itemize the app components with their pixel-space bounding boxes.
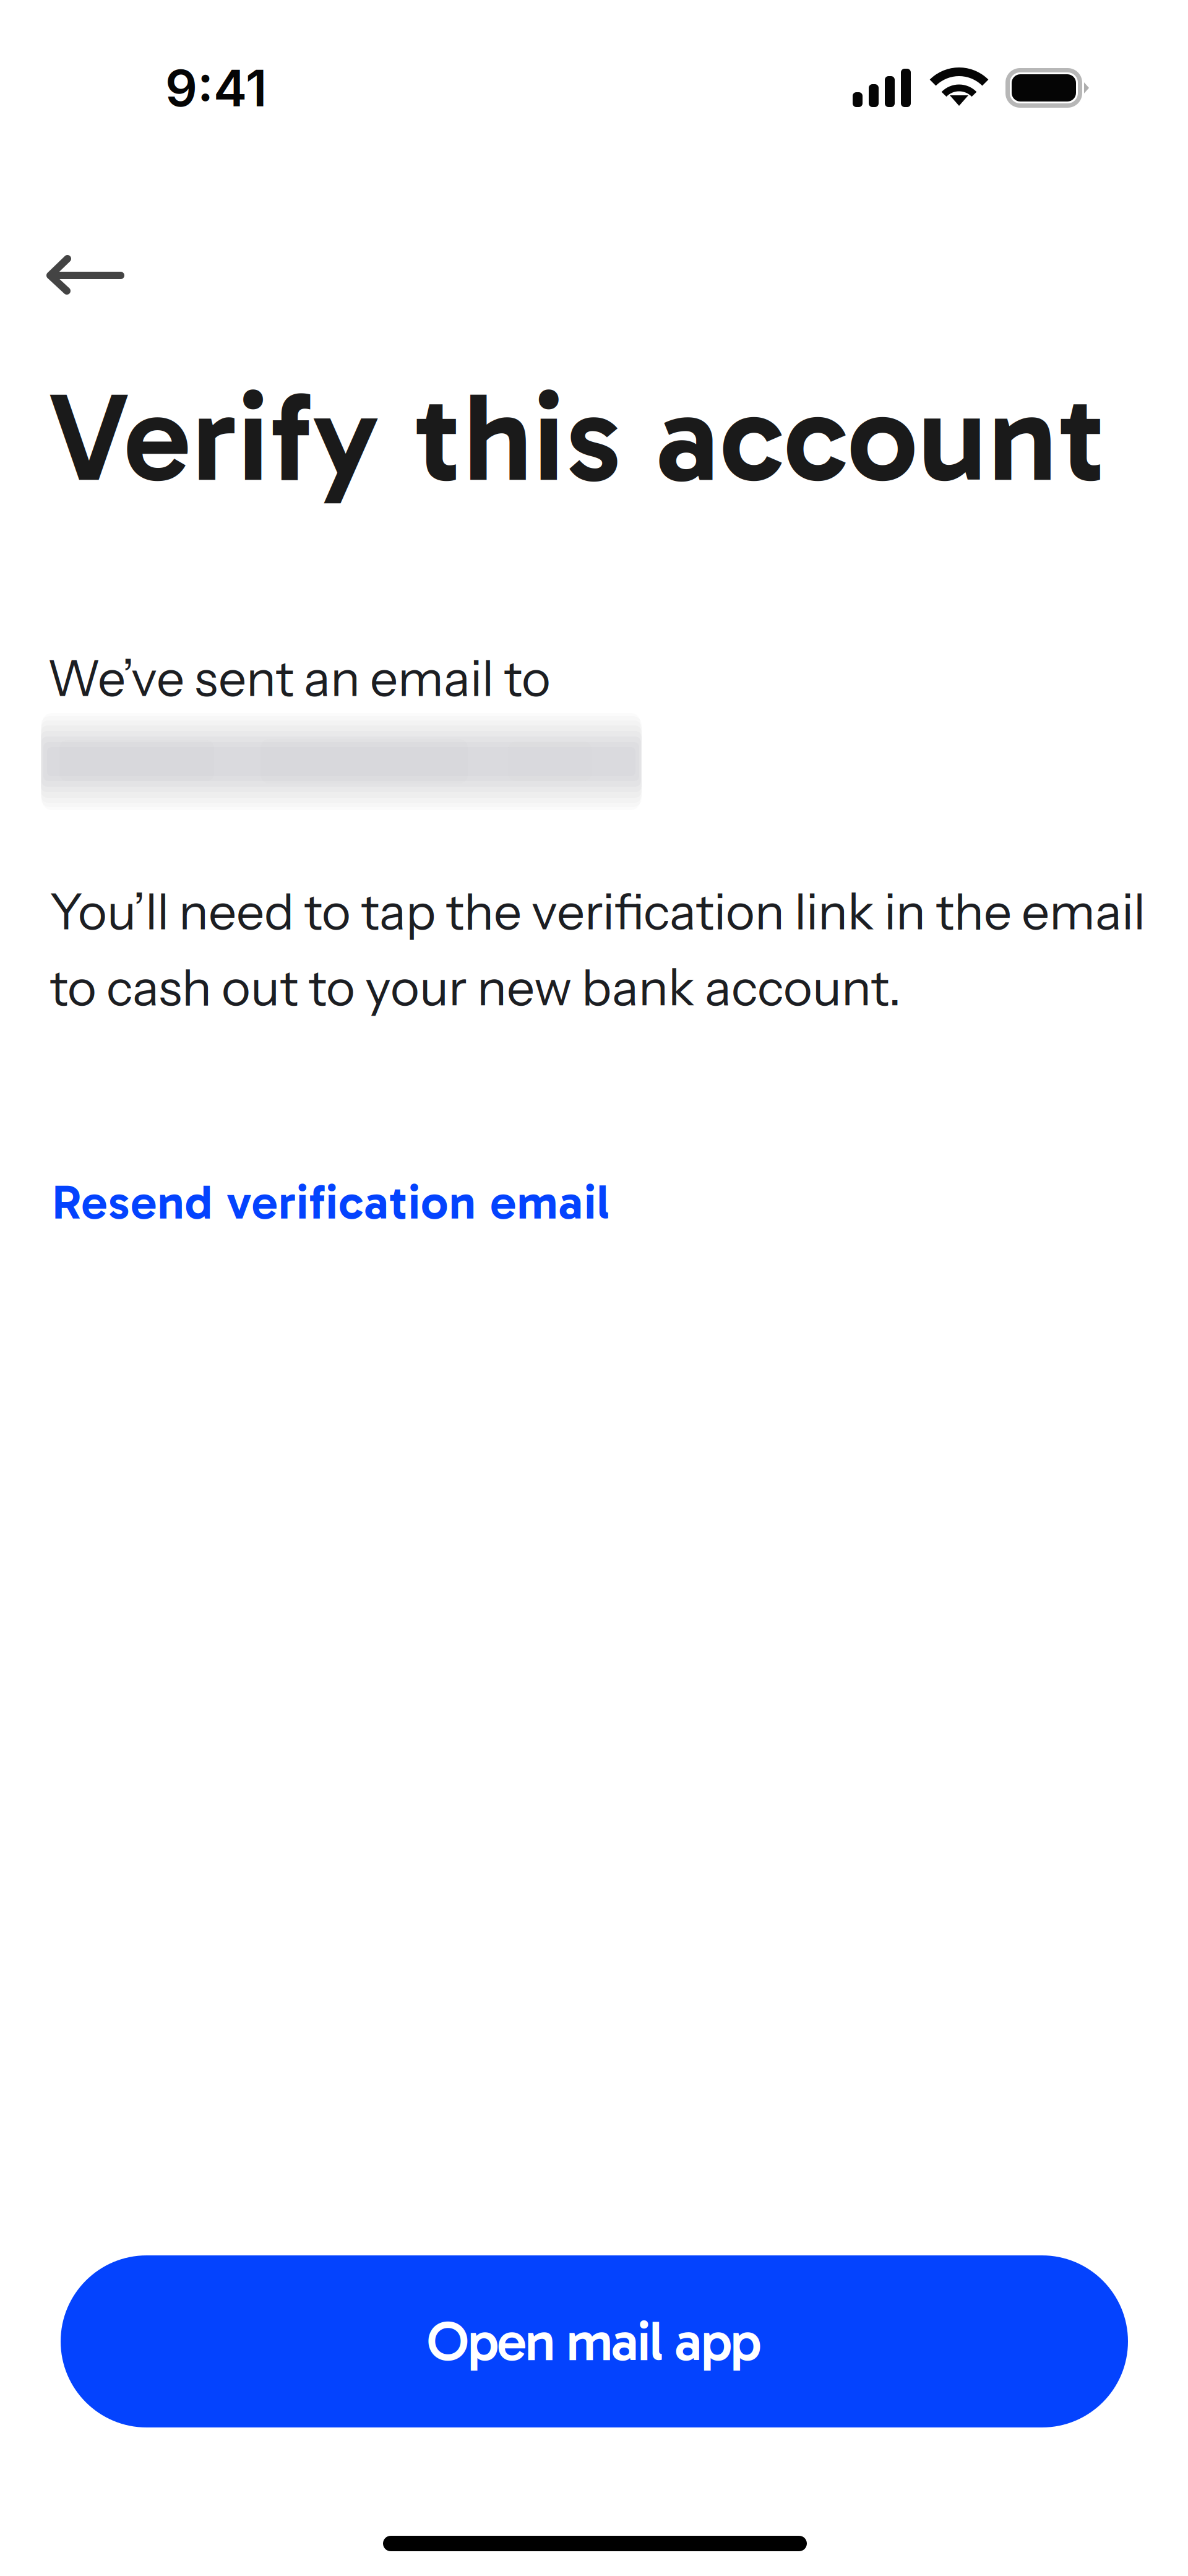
staticText: Open mail app: [427, 2308, 762, 2375]
staticText: We’ve sent an email to: [47, 648, 551, 708]
button[interactable]: Open mail app: [61, 2255, 1128, 2427]
staticText: Verify this account: [49, 363, 1106, 512]
staticText: You’ll need to tap the verification link…: [49, 881, 1145, 1018]
staticText: Resend verification email: [52, 1173, 610, 1231]
button[interactable]: Back: [5, 233, 166, 318]
staticText: 9:41: [165, 58, 267, 118]
button[interactable]: Resend verification email: [11, 1147, 610, 1257]
